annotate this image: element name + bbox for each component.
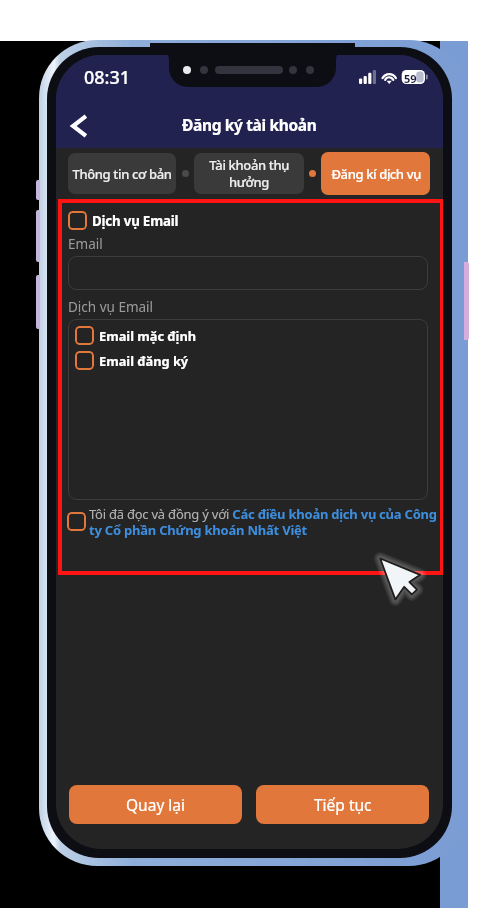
button[interactable]: Email mặc định — [75, 325, 197, 345]
staticText: Thông tin cơ bản — [72, 165, 172, 183]
button[interactable]: Đăng kí dịch vụ — [321, 152, 430, 195]
staticText: Tài khoản thụ hưởng — [209, 156, 289, 191]
button[interactable]: Tài khoản thụ hưởng — [194, 153, 304, 194]
staticText: Đăng ký tài khoản — [182, 114, 317, 135]
button[interactable]: Back — [56, 102, 99, 145]
staticText: Email đăng ký — [99, 352, 189, 369]
button[interactable] — [68, 256, 428, 290]
button[interactable] — [67, 512, 86, 531]
staticText: Tiếp tục — [314, 794, 372, 815]
staticText: Đăng kí dịch vụ — [331, 165, 421, 183]
staticText: Email — [68, 235, 103, 253]
button[interactable]: Thông tin cơ bản — [68, 153, 176, 194]
staticText: 08:31 — [84, 65, 131, 90]
staticText: Dịch vụ Email — [92, 212, 179, 230]
staticText: 59 — [404, 71, 417, 85]
staticText: Dịch vụ Email — [68, 298, 154, 316]
staticText: Quay lại — [126, 794, 186, 815]
staticText: Email mặc định — [99, 327, 197, 344]
button[interactable]: Tôi đã đọc và đồng ý với Các điều khoản … — [89, 505, 441, 538]
button[interactable]: Quay lại — [69, 785, 242, 824]
button[interactable]: Tiếp tục — [256, 785, 429, 824]
button[interactable]: Dịch vụ Email — [68, 211, 428, 230]
button[interactable]: Email đăng ký — [75, 350, 189, 370]
